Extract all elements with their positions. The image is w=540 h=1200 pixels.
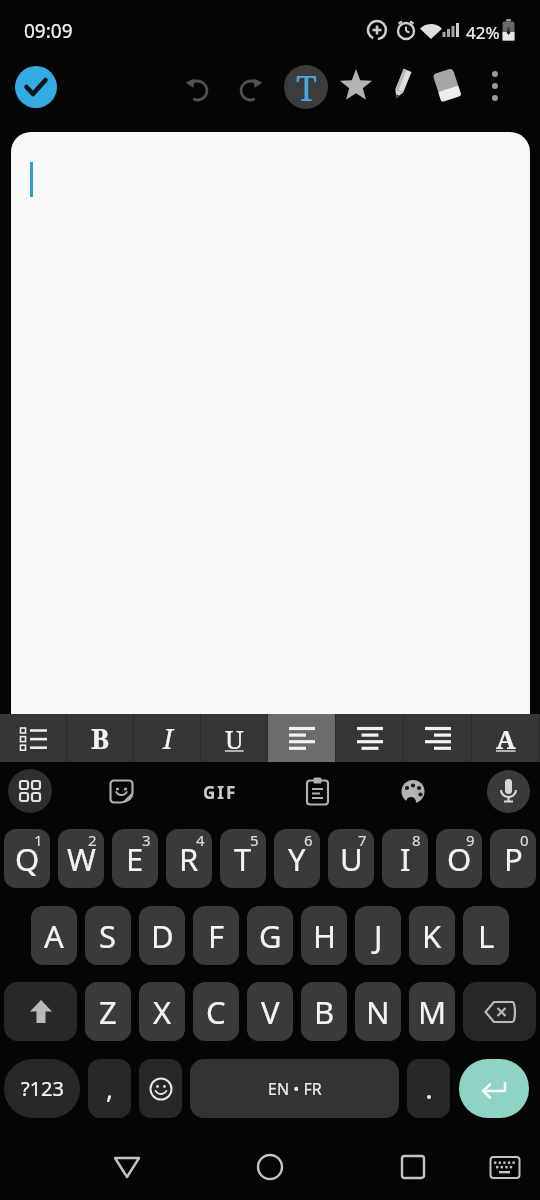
button[interactable]: [139, 1059, 182, 1118]
button[interactable]: [178, 69, 214, 105]
staticText: J: [374, 915, 383, 957]
staticText: ,: [106, 1071, 113, 1106]
staticText: C: [206, 991, 226, 1033]
button[interactable]: V: [247, 982, 293, 1041]
button[interactable]: C: [193, 982, 239, 1041]
button[interactable]: [336, 714, 404, 762]
button[interactable]: L: [463, 906, 509, 965]
staticText: 09:09: [24, 18, 73, 44]
button[interactable]: GIF: [203, 781, 238, 804]
button[interactable]: R: [166, 829, 212, 888]
button[interactable]: [337, 68, 375, 106]
button[interactable]: E: [112, 829, 158, 888]
button[interactable]: [109, 779, 134, 804]
button[interactable]: W: [58, 829, 104, 888]
button[interactable]: D: [139, 906, 185, 965]
button[interactable]: S: [85, 906, 131, 965]
staticText: F: [208, 915, 225, 957]
button[interactable]: H: [301, 906, 347, 965]
staticText: 42%: [466, 21, 500, 44]
button[interactable]: P: [490, 829, 536, 888]
staticText: O: [447, 838, 472, 880]
button[interactable]: T: [284, 65, 328, 109]
button[interactable]: Y: [274, 829, 320, 888]
staticText: 4: [196, 830, 205, 850]
button[interactable]: [459, 1059, 529, 1118]
button[interactable]: T: [220, 829, 266, 888]
button[interactable]: [398, 1152, 428, 1182]
button[interactable]: [429, 68, 465, 104]
button[interactable]: [15, 66, 57, 108]
button[interactable]: Q: [4, 829, 50, 888]
staticText: E: [126, 838, 144, 880]
staticText: X: [153, 991, 172, 1033]
button[interactable]: [255, 1152, 285, 1182]
button[interactable]: ?123: [4, 1059, 80, 1118]
button[interactable]: F: [193, 906, 239, 965]
button[interactable]: [489, 1152, 523, 1182]
staticText: ?123: [21, 1075, 64, 1102]
button[interactable]: K: [409, 906, 455, 965]
button[interactable]: A: [472, 714, 540, 762]
button[interactable]: Z: [85, 982, 131, 1041]
button[interactable]: U: [328, 829, 374, 888]
staticText: M: [418, 991, 447, 1033]
staticText: V: [261, 991, 280, 1033]
staticText: B: [314, 991, 335, 1033]
button[interactable]: [0, 714, 67, 762]
staticText: 7: [358, 830, 367, 850]
staticText: Y: [288, 838, 306, 880]
button[interactable]: [4, 982, 77, 1041]
button[interactable]: I: [382, 829, 428, 888]
button[interactable]: [112, 1152, 142, 1182]
staticText: P: [504, 838, 523, 880]
staticText: G: [259, 915, 282, 957]
staticText: 0: [520, 830, 529, 850]
button[interactable]: J: [355, 906, 401, 965]
button[interactable]: N: [355, 982, 401, 1041]
staticText: 9: [466, 830, 475, 850]
staticText: H: [313, 915, 336, 957]
button[interactable]: [268, 714, 336, 762]
staticText: S: [99, 915, 117, 957]
button[interactable]: X: [139, 982, 185, 1041]
button[interactable]: G: [247, 906, 293, 965]
staticText: 2: [88, 830, 97, 850]
button[interactable]: A: [31, 906, 77, 965]
button[interactable]: [11, 132, 530, 714]
button[interactable]: [487, 770, 530, 813]
button[interactable]: M: [409, 982, 455, 1041]
button[interactable]: [400, 779, 426, 805]
button[interactable]: O: [436, 829, 482, 888]
staticText: 5: [250, 830, 259, 850]
staticText: EN • FR: [268, 1078, 322, 1100]
staticText: K: [422, 915, 442, 957]
button[interactable]: [407, 1059, 450, 1118]
staticText: I: [163, 720, 173, 757]
button[interactable]: B: [67, 714, 134, 762]
button[interactable]: I: [134, 714, 201, 762]
staticText: A: [44, 915, 64, 957]
button[interactable]: [404, 714, 472, 762]
staticText: R: [179, 838, 199, 880]
button[interactable]: [384, 68, 418, 104]
staticText: A: [496, 721, 516, 756]
staticText: B: [91, 720, 110, 757]
staticText: D: [151, 915, 174, 957]
staticText: W: [67, 838, 96, 880]
button[interactable]: [304, 777, 331, 806]
staticText: Z: [99, 991, 117, 1033]
staticText: T: [234, 838, 252, 880]
button[interactable]: [487, 69, 503, 105]
staticText: 8: [412, 830, 421, 850]
button[interactable]: [234, 69, 270, 105]
button[interactable]: U: [201, 714, 268, 762]
staticText: I: [400, 838, 411, 880]
button[interactable]: ,: [88, 1059, 131, 1118]
button[interactable]: B: [301, 982, 347, 1041]
button[interactable]: EN • FR: [190, 1059, 399, 1118]
staticText: N: [366, 991, 390, 1033]
staticText: 3: [142, 830, 151, 850]
button[interactable]: [463, 982, 536, 1041]
button[interactable]: [8, 769, 52, 813]
